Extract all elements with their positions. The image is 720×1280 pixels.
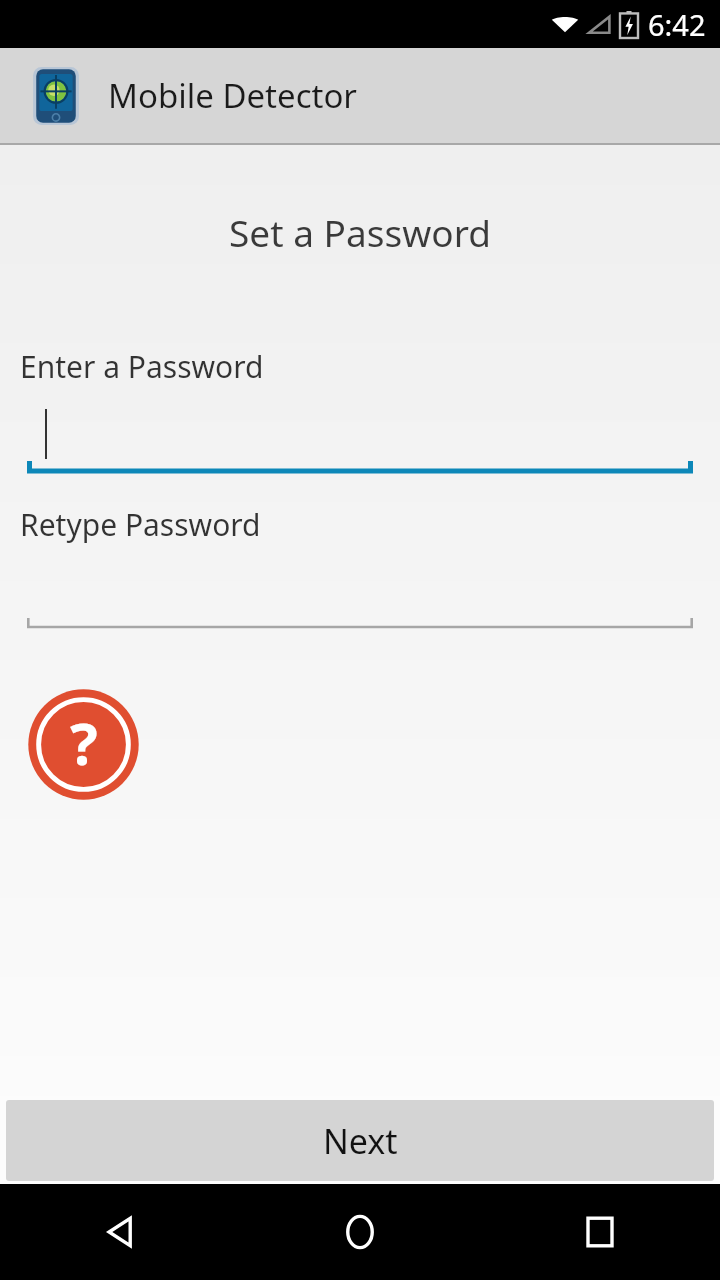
button[interactable]: Recents [480,1184,720,1280]
button[interactable] [27,403,693,475]
staticText: Next [323,1118,398,1164]
button[interactable]: Home [240,1184,480,1280]
button[interactable]: Next [6,1100,714,1181]
staticText: Set a Password [0,207,720,257]
staticText: Mobile Detector [108,73,357,118]
button[interactable] [27,559,693,631]
staticText: Enter a Password [20,346,264,387]
staticText: 6:42 [648,5,706,44]
staticText: ? [70,703,98,782]
staticText: Retype Password [20,504,261,545]
button[interactable]: Back [0,1184,240,1280]
button[interactable]: Help [26,687,141,802]
